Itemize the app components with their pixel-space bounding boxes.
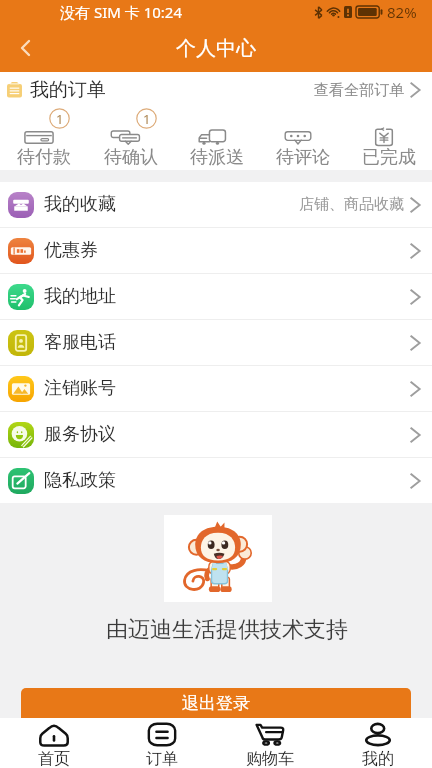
button[interactable]: 我的地址 — [0, 274, 432, 319]
staticText: 82% — [387, 2, 417, 22]
staticText: 已完成 — [362, 146, 416, 169]
button[interactable]: 待评论 — [260, 108, 346, 170]
staticText: 隐私政策 — [44, 469, 116, 492]
staticText: 购物车 — [246, 749, 294, 768]
button[interactable]: 注销账号 — [0, 366, 432, 411]
button[interactable]: 订单 — [108, 718, 216, 768]
staticText: 待付款 — [17, 146, 71, 169]
button[interactable]: Back — [10, 33, 40, 63]
staticText: 客服电话 — [44, 331, 116, 354]
button[interactable]: 客服电话 — [0, 320, 432, 365]
staticText: 待评论 — [276, 146, 330, 169]
staticText: 注销账号 — [44, 377, 116, 400]
button[interactable]: 1 — [87, 108, 174, 170]
staticText: 订单 — [146, 749, 178, 768]
staticText: 1 — [143, 110, 151, 128]
staticText: 没有 SIM 卡 10:24 — [60, 2, 182, 22]
staticText: 由迈迪生活提供技术支持 — [106, 616, 348, 644]
staticText: 优惠券 — [44, 239, 98, 262]
staticText: 首页 — [38, 749, 70, 768]
staticText: 我的订单 — [30, 78, 106, 102]
staticText: 1 — [56, 110, 64, 128]
staticText: 待派送 — [190, 146, 244, 169]
staticText: 我的 — [362, 749, 394, 768]
button[interactable]: 我的 — [324, 718, 432, 768]
staticText: 我的地址 — [44, 285, 116, 308]
button[interactable]: 待派送 — [174, 108, 260, 170]
button[interactable]: 购物车 — [216, 718, 324, 768]
button[interactable]: 我的收藏 — [0, 182, 432, 227]
button[interactable]: 首页 — [0, 718, 108, 768]
staticText: 退出登录 — [182, 693, 250, 714]
staticText: 我的收藏 — [44, 193, 116, 216]
staticText: 待确认 — [104, 146, 158, 169]
staticText: 店铺、商品收藏 — [299, 195, 404, 214]
staticText: 个人中心 — [176, 36, 256, 61]
staticText: 查看全部订单 — [314, 81, 404, 100]
button[interactable]: 1 — [0, 108, 87, 170]
button[interactable]: 退出登录 — [21, 688, 411, 718]
button[interactable]: 已完成 — [346, 108, 432, 170]
button[interactable]: 我的订单 — [0, 72, 432, 108]
button[interactable]: 服务协议 — [0, 412, 432, 457]
button[interactable]: 优惠券 — [0, 228, 432, 273]
button[interactable]: 隐私政策 — [0, 458, 432, 503]
staticText: 服务协议 — [44, 423, 116, 446]
